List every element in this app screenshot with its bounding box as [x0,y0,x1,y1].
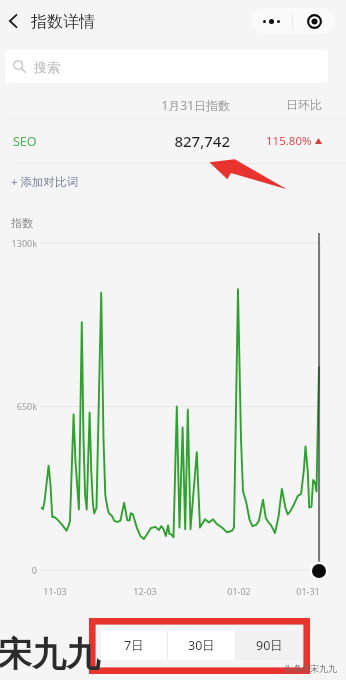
staticText: 指数详情 [31,12,95,32]
staticText: 11-03 [35,585,75,597]
button[interactable]: 30日 [168,631,235,660]
staticText: SEO [13,133,37,150]
staticText: 搜索 [34,59,60,75]
button[interactable]: 搜索 [5,50,328,83]
button[interactable]: + 添加对比词 [0,164,346,200]
staticText: 指数 [11,216,33,230]
staticText: 01-31 [288,585,328,597]
staticText: 115.80% [266,133,312,149]
staticText: 0 [0,564,37,576]
staticText: 650k [0,400,37,412]
staticText: 12-03 [125,585,165,597]
button[interactable]: More options [251,8,292,34]
staticText: + 添加对比词 [11,174,79,190]
button[interactable]: 90日 [236,631,303,660]
button[interactable]: Close [293,8,335,34]
staticText: 头条@宋九九 [284,662,338,674]
staticText: 1300k [0,237,37,249]
staticText: 7日 [124,637,144,654]
staticText: 宋九九 [0,633,100,676]
staticText: 30日 [188,637,215,654]
button[interactable]: Back [0,8,26,34]
staticText: 日环比 [243,97,322,112]
button[interactable]: 7日 [101,631,167,660]
staticText: 827,742 [70,131,230,151]
staticText: 01-02 [219,585,259,597]
button[interactable]: SEO [0,119,346,163]
staticText: 1月31日指数 [70,97,230,113]
staticText: 90日 [256,637,283,654]
